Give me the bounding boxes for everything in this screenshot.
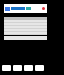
button[interactable]: Item [13,65,22,71]
button[interactable]: Item [2,65,11,71]
button[interactable]: Item [35,65,44,71]
button[interactable]: Item [24,65,33,71]
